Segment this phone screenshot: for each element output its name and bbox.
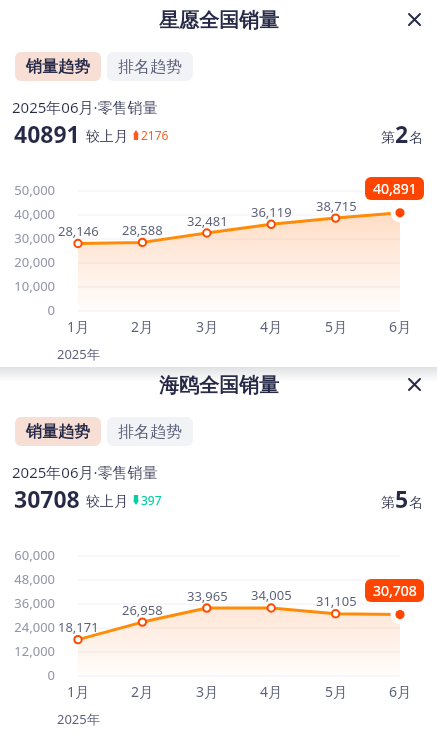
staticText: 3月 [196, 682, 219, 701]
staticText: 40891 [14, 118, 80, 149]
staticText: 6月 [389, 682, 412, 701]
button[interactable]: 销量趋势 [15, 417, 101, 446]
staticText: 2176 [141, 127, 169, 143]
staticText: 12,000 [0, 642, 55, 660]
staticText: 5 [395, 483, 409, 514]
staticText: 销量趋势 [26, 422, 90, 442]
staticText: 26,958 [122, 601, 163, 619]
button[interactable]: Close [400, 370, 428, 398]
staticText: 0 [0, 301, 55, 319]
staticText: 5月 [325, 682, 348, 701]
staticText: 30,708 [373, 581, 417, 600]
button[interactable]: 排名趋势 [107, 52, 193, 81]
staticText: 2025年 [57, 710, 100, 728]
staticText: 销量趋势 [26, 57, 90, 77]
button[interactable]: Close [400, 5, 428, 33]
staticText: 30708 [14, 483, 80, 514]
staticText: 36,000 [0, 594, 55, 612]
staticText: 1月 [67, 317, 90, 336]
staticText: 2 [395, 118, 409, 149]
staticText: 第 [381, 494, 395, 512]
staticText: 名 [409, 129, 423, 147]
staticText: 20,000 [0, 253, 55, 271]
staticText: 10,000 [0, 277, 55, 295]
staticText: 2025年 [57, 345, 100, 363]
staticText: 排名趋势 [118, 57, 182, 77]
staticText: 星愿全国销量 [159, 8, 279, 33]
staticText: 第 [381, 129, 395, 147]
staticText: 2月 [131, 682, 154, 701]
staticText: 34,005 [251, 586, 292, 604]
staticText: 较上月 [86, 493, 128, 511]
staticText: 28,146 [58, 222, 99, 240]
staticText: 28,588 [122, 221, 163, 239]
staticText: 31,105 [316, 592, 357, 610]
staticText: 1月 [67, 682, 90, 701]
staticText: 397 [141, 492, 162, 508]
staticText: 33,965 [187, 587, 228, 605]
staticText: 海鸥全国销量 [159, 373, 279, 398]
staticText: 60,000 [0, 546, 55, 564]
staticText: 2月 [131, 317, 154, 336]
staticText: 32,481 [187, 212, 228, 230]
staticText: 48,000 [0, 570, 55, 588]
staticText: 5月 [325, 317, 348, 336]
staticText: 36,119 [251, 203, 292, 221]
staticText: 40,000 [0, 205, 55, 223]
staticText: 38,715 [316, 197, 357, 215]
button[interactable]: 销量趋势 [15, 52, 101, 81]
staticText: 0 [0, 666, 55, 684]
staticText: 名 [409, 494, 423, 512]
staticText: 4月 [260, 682, 283, 701]
button[interactable]: 排名趋势 [107, 417, 193, 446]
staticText: 3月 [196, 317, 219, 336]
staticText: 排名趋势 [118, 422, 182, 442]
staticText: 2025年06月·零售销量 [12, 462, 158, 482]
staticText: 30,000 [0, 229, 55, 247]
staticText: 18,171 [58, 618, 99, 636]
staticText: 较上月 [86, 128, 128, 146]
staticText: 24,000 [0, 618, 55, 636]
staticText: 4月 [260, 317, 283, 336]
staticText: 6月 [389, 317, 412, 336]
staticText: 40,891 [373, 179, 417, 198]
staticText: 50,000 [0, 181, 55, 199]
staticText: 2025年06月·零售销量 [12, 97, 158, 117]
